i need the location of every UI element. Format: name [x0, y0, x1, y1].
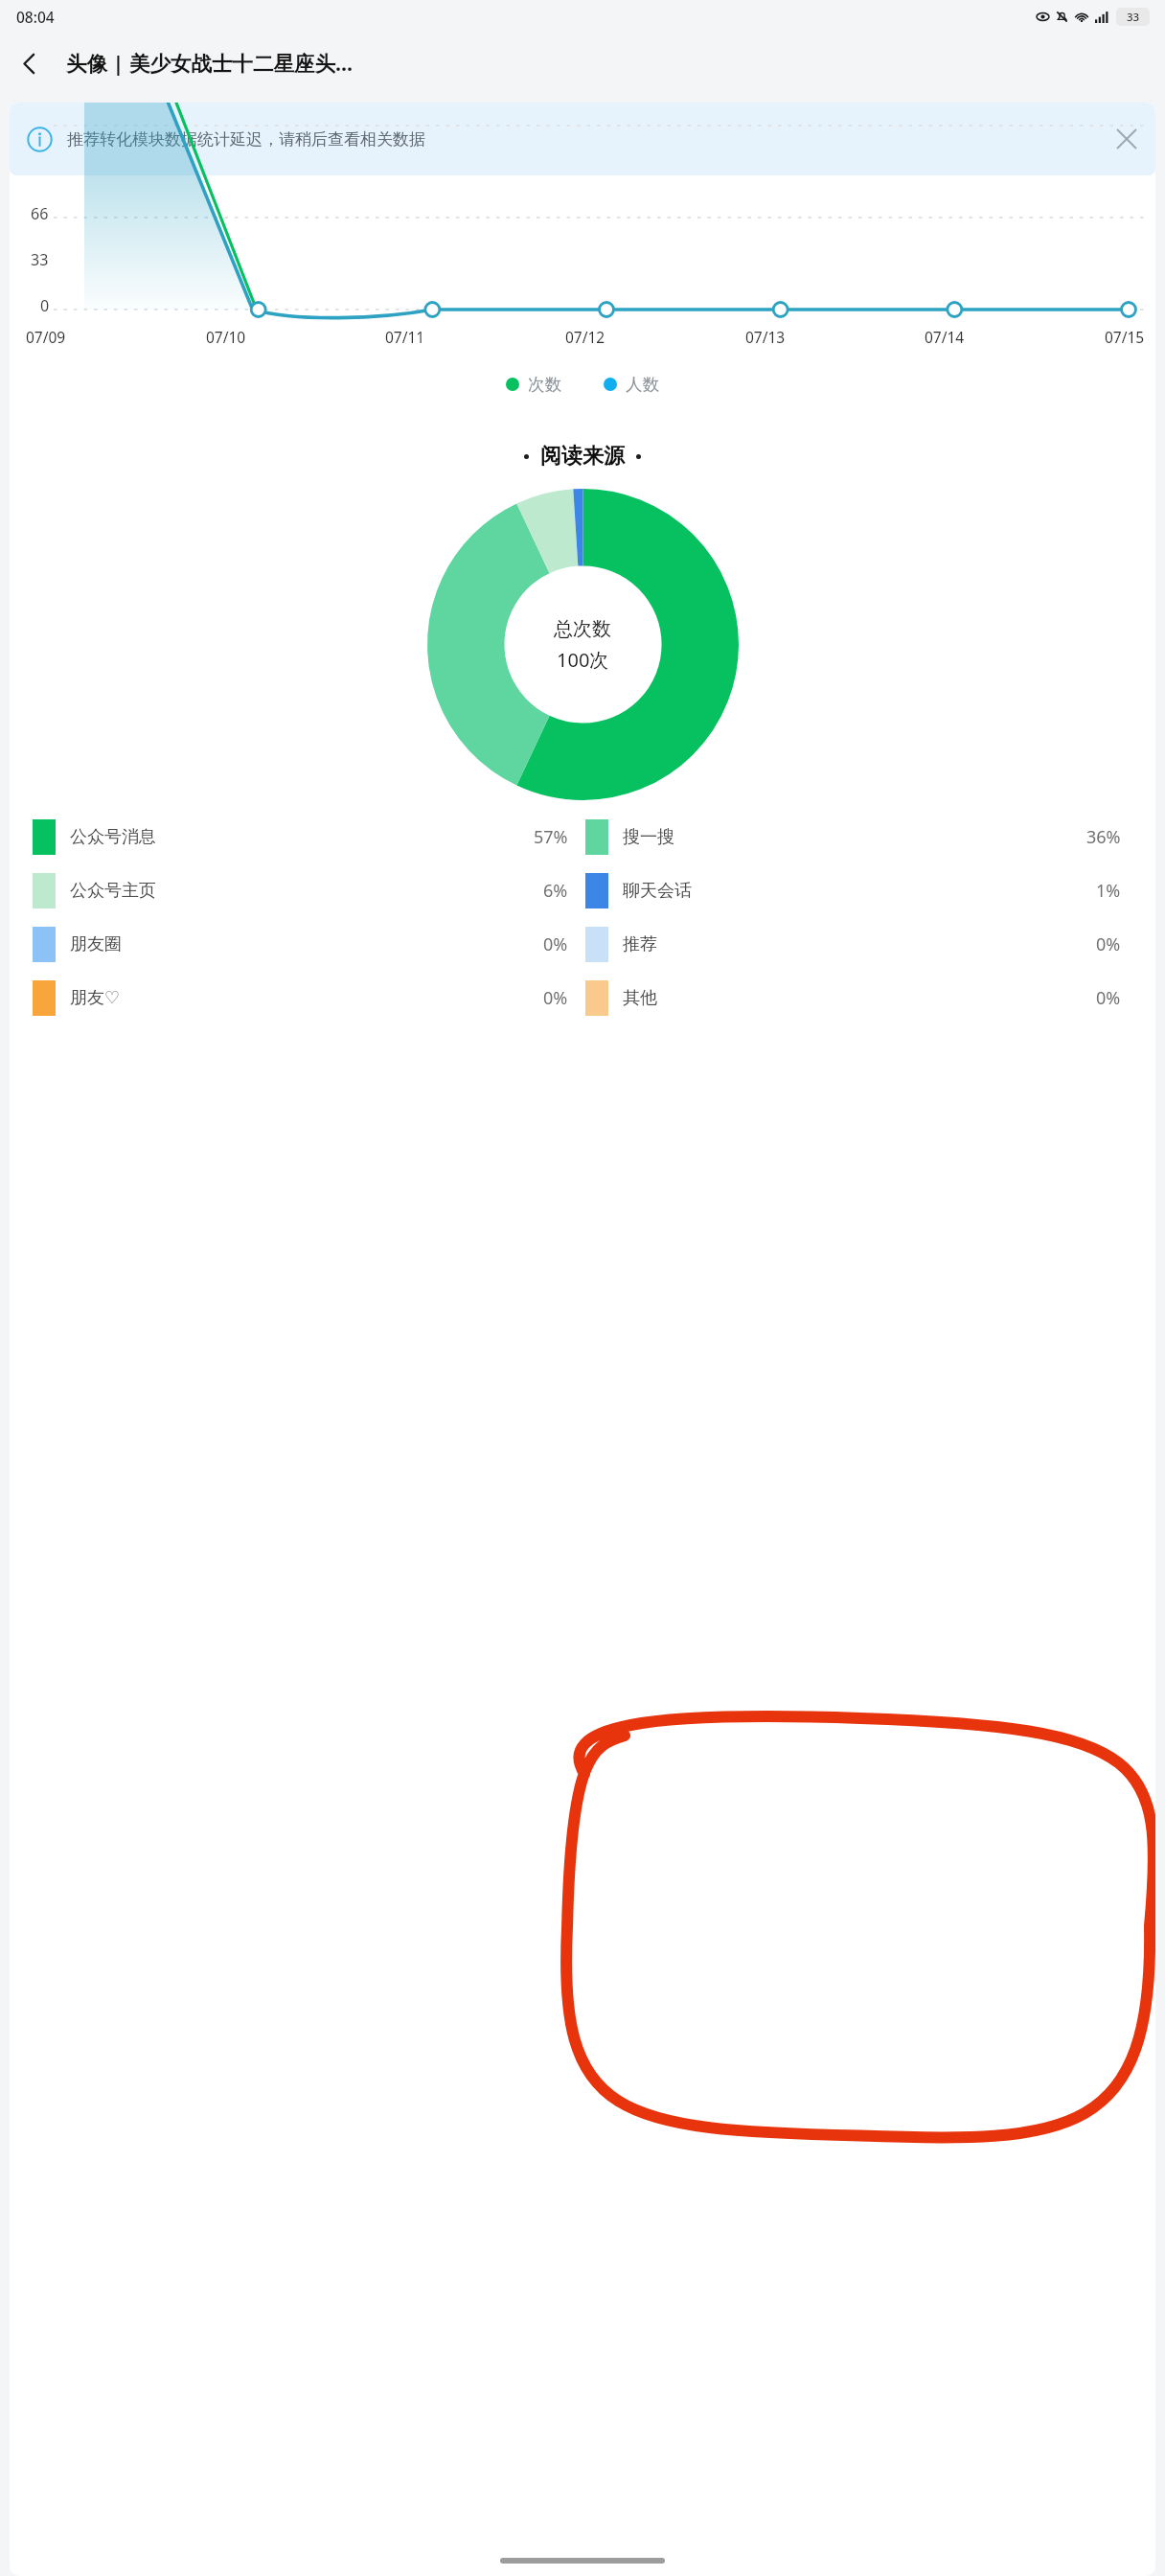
staticText: 0	[40, 295, 50, 316]
button[interactable]: 公众号主页	[33, 873, 585, 908]
staticText: 0%	[543, 986, 568, 1010]
button[interactable]: 次数	[506, 374, 561, 395]
staticText: 100次	[557, 647, 609, 673]
staticText: 推荐转化模块数据统计延迟，请稍后查看相关数据	[67, 129, 1102, 149]
button[interactable]: 其他	[585, 980, 1138, 1016]
staticText: 聊天会话	[623, 880, 692, 902]
staticText: 总次数	[554, 617, 611, 641]
button[interactable]: 推荐转化模块数据统计延迟，请稍后查看相关数据	[10, 103, 1155, 175]
staticText: 公众号主页	[70, 880, 156, 902]
staticText: 07/12	[565, 327, 605, 347]
staticText: 0%	[1096, 986, 1121, 1010]
button[interactable]: 聊天会话	[585, 873, 1138, 908]
staticText: 07/13	[745, 327, 786, 347]
staticText: 33	[1127, 10, 1140, 25]
staticText: 08:04	[16, 7, 55, 27]
staticText: 1%	[1096, 879, 1121, 903]
staticText: 推荐	[623, 933, 657, 955]
staticText: 0%	[1096, 932, 1121, 956]
staticText: 57%	[534, 825, 568, 849]
staticText: 朋友圈	[70, 933, 122, 955]
button[interactable]: 朋友♡	[33, 980, 585, 1016]
button[interactable]: 搜一搜	[585, 819, 1138, 855]
staticText: 6%	[543, 879, 568, 903]
staticText: 朋友♡	[70, 987, 121, 1009]
button[interactable]: 公众号消息	[33, 819, 585, 855]
staticText: 07/09	[26, 327, 66, 347]
button[interactable]: Close	[1109, 122, 1144, 156]
staticText: 头像 | 美少女战士十二星座头...	[66, 49, 354, 77]
staticText: 其他	[623, 987, 657, 1009]
button[interactable]: 朋友圈	[33, 927, 585, 962]
button[interactable]: 人数	[604, 374, 659, 395]
button[interactable]: Back	[5, 39, 53, 87]
staticText: 66	[31, 203, 49, 224]
staticText: 07/15	[1105, 327, 1145, 347]
staticText: 人数	[626, 374, 659, 395]
button[interactable]: 推荐	[585, 927, 1138, 962]
staticText: 阅读来源	[540, 443, 625, 470]
staticText: 36%	[1086, 825, 1121, 849]
staticText: 公众号消息	[70, 826, 156, 848]
staticText: 07/10	[206, 327, 246, 347]
staticText: 07/11	[385, 327, 425, 347]
staticText: 次数	[528, 374, 561, 395]
staticText: 0%	[543, 932, 568, 956]
staticText: 07/14	[925, 327, 965, 347]
staticText: 33	[31, 249, 49, 270]
staticText: 搜一搜	[623, 826, 674, 848]
